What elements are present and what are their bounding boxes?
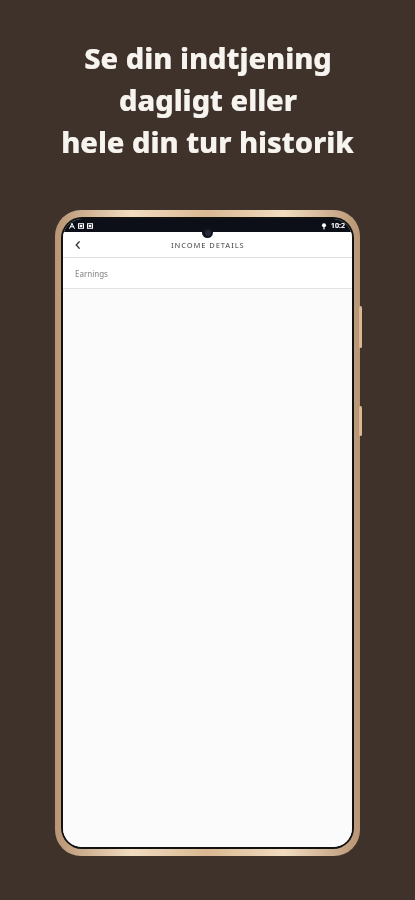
button[interactable]: Back: [67, 234, 89, 256]
staticText: Earnings: [75, 268, 108, 279]
staticText: INCOME DETAILS: [171, 240, 245, 250]
staticText: hele din tur historik: [61, 122, 354, 161]
staticText: 10:2: [331, 221, 345, 231]
staticText: dagligt eller: [119, 80, 297, 119]
button[interactable]: Earnings: [63, 258, 352, 288]
staticText: Se din indtjening: [84, 38, 332, 77]
